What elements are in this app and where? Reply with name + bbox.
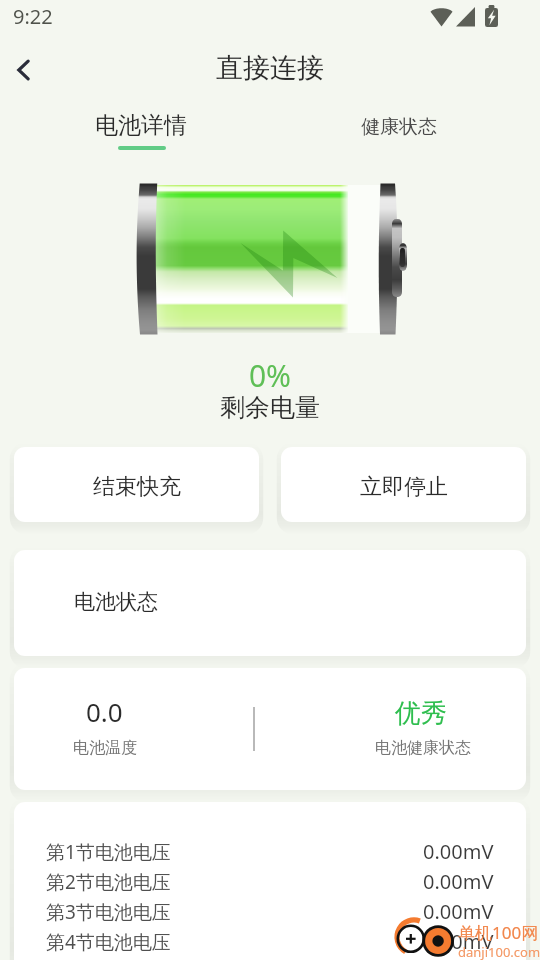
button[interactable]: 电池状态 bbox=[14, 550, 526, 656]
staticText: 0.00mV bbox=[423, 898, 494, 925]
staticText: 直接连接 bbox=[0, 51, 540, 85]
button[interactable]: 结束快充 bbox=[14, 447, 259, 522]
staticText: 优秀 bbox=[395, 697, 447, 730]
button[interactable]: Back bbox=[0, 46, 48, 94]
staticText: 第3节电池电压 bbox=[46, 899, 171, 925]
staticText: 第1节电池电压 bbox=[46, 839, 171, 865]
staticText: 9:22 bbox=[13, 3, 53, 30]
staticText: 0.00mV bbox=[423, 928, 494, 955]
staticText: 电池温度 bbox=[73, 738, 137, 758]
staticText: 0.00mV bbox=[423, 838, 494, 865]
staticText: 0.00mV bbox=[423, 868, 494, 895]
staticText: 第4节电池电压 bbox=[46, 929, 171, 955]
button[interactable]: 电池详情 bbox=[66, 102, 216, 154]
button[interactable]: 健康状态 bbox=[324, 102, 474, 154]
button[interactable]: 立即停止 bbox=[281, 447, 526, 522]
staticText: 0% bbox=[0, 355, 540, 396]
staticText: 电池状态 bbox=[74, 589, 158, 615]
staticText: danji100.com bbox=[458, 943, 540, 960]
staticText: 第2节电池电压 bbox=[46, 869, 171, 895]
staticText: 0.0 bbox=[86, 694, 123, 729]
staticText: 单机100网 bbox=[458, 921, 539, 944]
staticText: 结束快充 bbox=[93, 473, 181, 501]
staticText: 剩余电量 bbox=[0, 392, 540, 423]
staticText: 立即停止 bbox=[360, 473, 448, 501]
staticText: 电池详情 bbox=[66, 111, 216, 140]
staticText: 健康状态 bbox=[324, 115, 474, 139]
staticText: 电池健康状态 bbox=[375, 738, 471, 758]
